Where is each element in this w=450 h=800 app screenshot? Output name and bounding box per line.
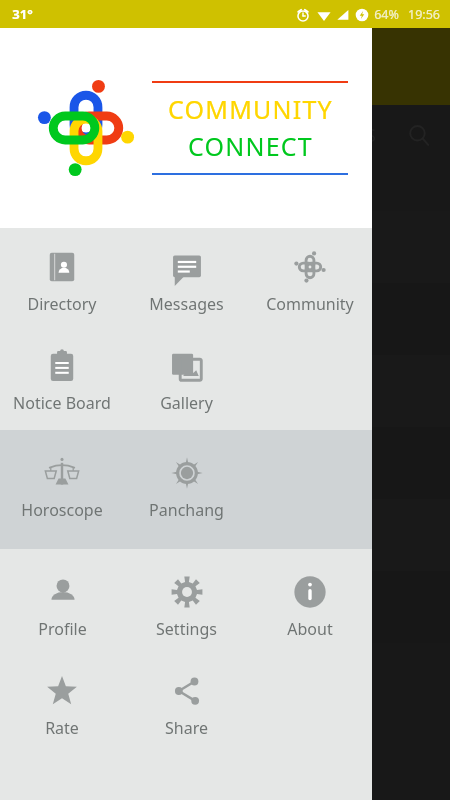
staticText: Share bbox=[165, 717, 208, 739]
staticText: Community bbox=[266, 293, 354, 315]
button[interactable]: Panchang bbox=[145, 452, 228, 525]
staticText: Horoscope bbox=[21, 499, 103, 521]
staticText: 31° bbox=[12, 5, 33, 23]
staticText: Profile bbox=[38, 618, 87, 640]
staticText: Gallery bbox=[160, 392, 213, 414]
button[interactable]: Share bbox=[161, 670, 212, 743]
staticText: 19:56 bbox=[408, 6, 440, 23]
button[interactable]: Community bbox=[262, 246, 358, 319]
button[interactable]: Messages bbox=[145, 246, 228, 319]
staticText: Notice Board bbox=[13, 392, 111, 414]
staticText: Rate bbox=[45, 717, 79, 739]
staticText: COMMUNITY bbox=[168, 92, 333, 126]
staticText: S bbox=[366, 123, 376, 148]
button[interactable]: Rate bbox=[41, 670, 83, 743]
staticText: Directory bbox=[27, 293, 97, 315]
staticText: About bbox=[287, 618, 333, 640]
button[interactable]: About bbox=[283, 571, 337, 644]
staticText: CONNECT bbox=[188, 129, 313, 163]
staticText: Panchang bbox=[149, 499, 224, 521]
button[interactable]: Profile bbox=[34, 571, 91, 644]
staticText: Settings bbox=[156, 618, 217, 640]
staticText: Messages bbox=[149, 293, 224, 315]
button[interactable]: Notice Board bbox=[9, 345, 115, 418]
button[interactable]: Horoscope bbox=[17, 452, 107, 525]
staticText: 64% bbox=[374, 6, 399, 23]
button[interactable]: Directory bbox=[23, 246, 101, 319]
button[interactable]: Gallery bbox=[156, 345, 217, 418]
button[interactable]: Settings bbox=[152, 571, 221, 644]
